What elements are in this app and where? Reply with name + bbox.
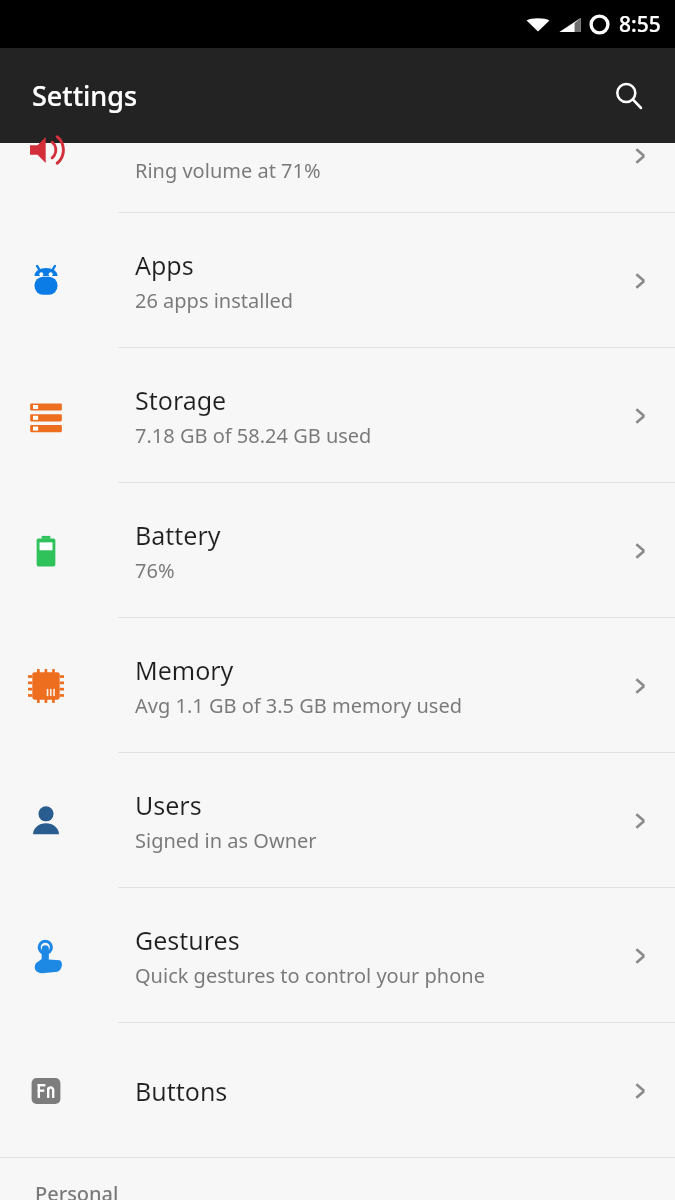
staticText: Personal	[35, 1180, 119, 1200]
staticText: Memory	[135, 653, 234, 687]
staticText: 26 apps installed	[135, 287, 294, 314]
staticText: Users	[135, 788, 202, 822]
button[interactable]	[0, 143, 675, 213]
staticText: Signed in as Owner	[135, 827, 317, 854]
staticText: Settings	[32, 77, 138, 114]
staticText: Ring volume at 71%	[135, 157, 321, 184]
staticText: Quick gestures to control your phone	[135, 962, 485, 989]
button[interactable]: Storage	[0, 348, 675, 483]
staticText: Gestures	[135, 923, 240, 957]
staticText: Battery	[135, 518, 221, 552]
staticText: Avg 1.1 GB of 3.5 GB memory used	[135, 692, 462, 719]
button[interactable]: Gestures	[0, 888, 675, 1023]
staticText: Apps	[135, 248, 194, 282]
button[interactable]: Apps	[0, 213, 675, 348]
button[interactable]: Search	[601, 68, 657, 124]
button[interactable]: Users	[0, 753, 675, 888]
staticText: Storage	[135, 383, 227, 417]
staticText: 7.18 GB of 58.24 GB used	[135, 422, 372, 449]
button[interactable]: Memory	[0, 618, 675, 753]
staticText: 8:55	[619, 10, 661, 39]
staticText: Buttons	[135, 1074, 228, 1108]
button[interactable]: Battery	[0, 483, 675, 618]
staticText: 76%	[135, 557, 175, 584]
button[interactable]: Buttons	[0, 1023, 675, 1158]
